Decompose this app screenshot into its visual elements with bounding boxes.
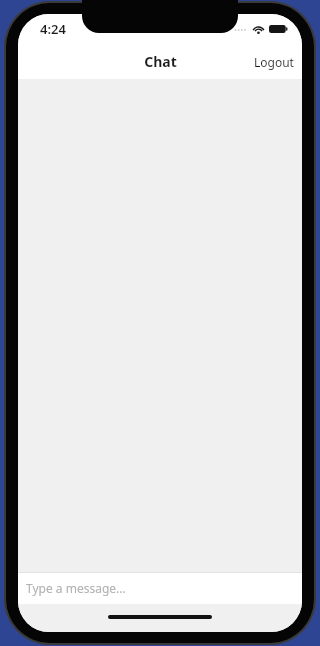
button[interactable]: Logout <box>246 48 302 76</box>
staticText: Type a message... <box>26 580 126 596</box>
staticText: 4:24 <box>40 20 66 38</box>
staticText: Chat <box>144 52 177 71</box>
button[interactable]: Type a message... <box>18 572 302 604</box>
staticText: Logout <box>254 54 294 70</box>
